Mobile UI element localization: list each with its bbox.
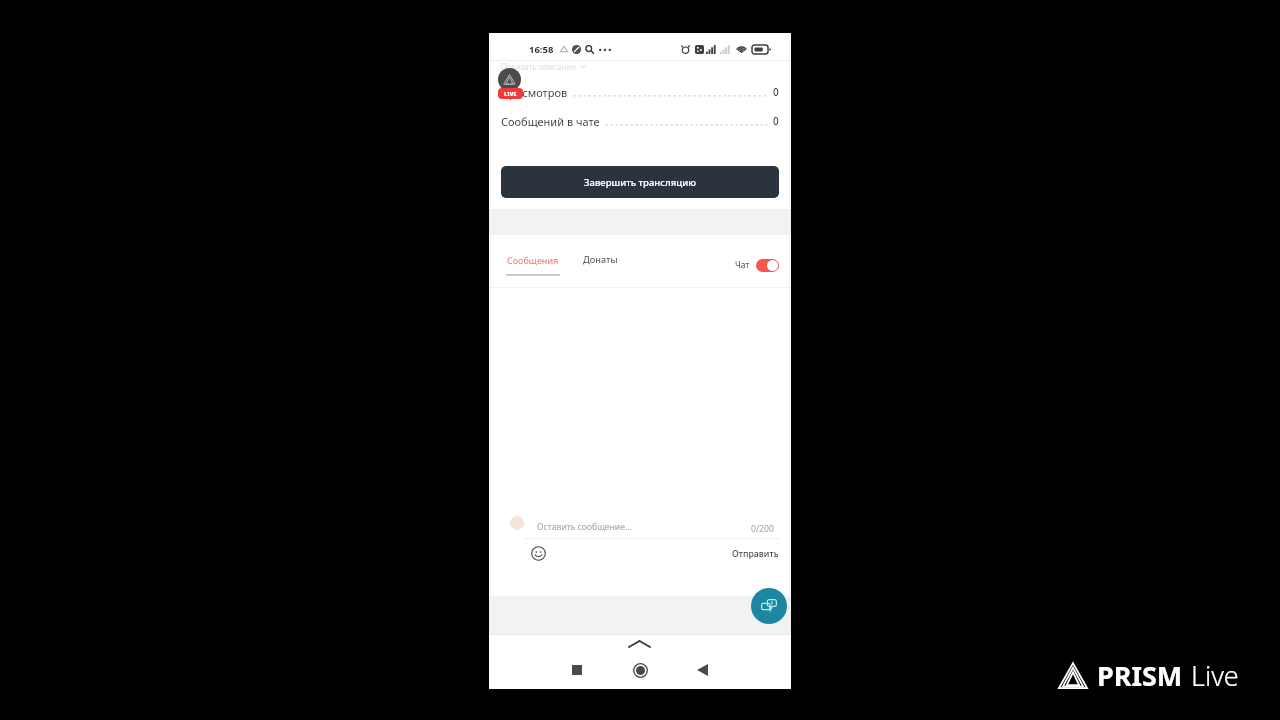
staticText: 0/200 — [751, 523, 774, 535]
button[interactable]: Показать описание — [501, 59, 587, 73]
staticText: Сообщения — [507, 254, 559, 266]
button[interactable]: Завершить трансляцию — [501, 166, 779, 198]
button[interactable]: Open chat overlay — [751, 588, 787, 624]
button[interactable]: Донаты — [583, 248, 618, 270]
staticText: Оставить сообщение... — [537, 521, 632, 533]
staticText: 0 — [773, 114, 779, 128]
staticText: Донаты — [583, 253, 618, 266]
staticText: Live — [1191, 657, 1239, 694]
button[interactable]: Отправить — [723, 545, 779, 563]
button[interactable]: Сообщения — [505, 250, 561, 276]
staticText: 16:58 — [529, 43, 554, 56]
staticText: Показать описание — [501, 61, 576, 72]
button[interactable]: Back — [689, 657, 715, 683]
staticText: 0 — [773, 85, 779, 99]
staticText: Чат — [735, 259, 750, 271]
button[interactable]: Emoji — [530, 545, 546, 561]
button[interactable]: Recents — [564, 657, 590, 683]
staticText: Отправить — [732, 548, 779, 560]
button[interactable]: Channel avatar — [498, 68, 521, 91]
button[interactable]: Чат — [735, 255, 779, 275]
staticText: LIVE — [504, 90, 517, 97]
staticText: Сообщений в чате — [501, 114, 600, 129]
staticText: Просмотров — [501, 85, 568, 100]
staticText: PRISM — [1097, 657, 1183, 694]
staticText: Завершить трансляцию — [584, 176, 697, 189]
button[interactable]: Home — [627, 657, 653, 683]
